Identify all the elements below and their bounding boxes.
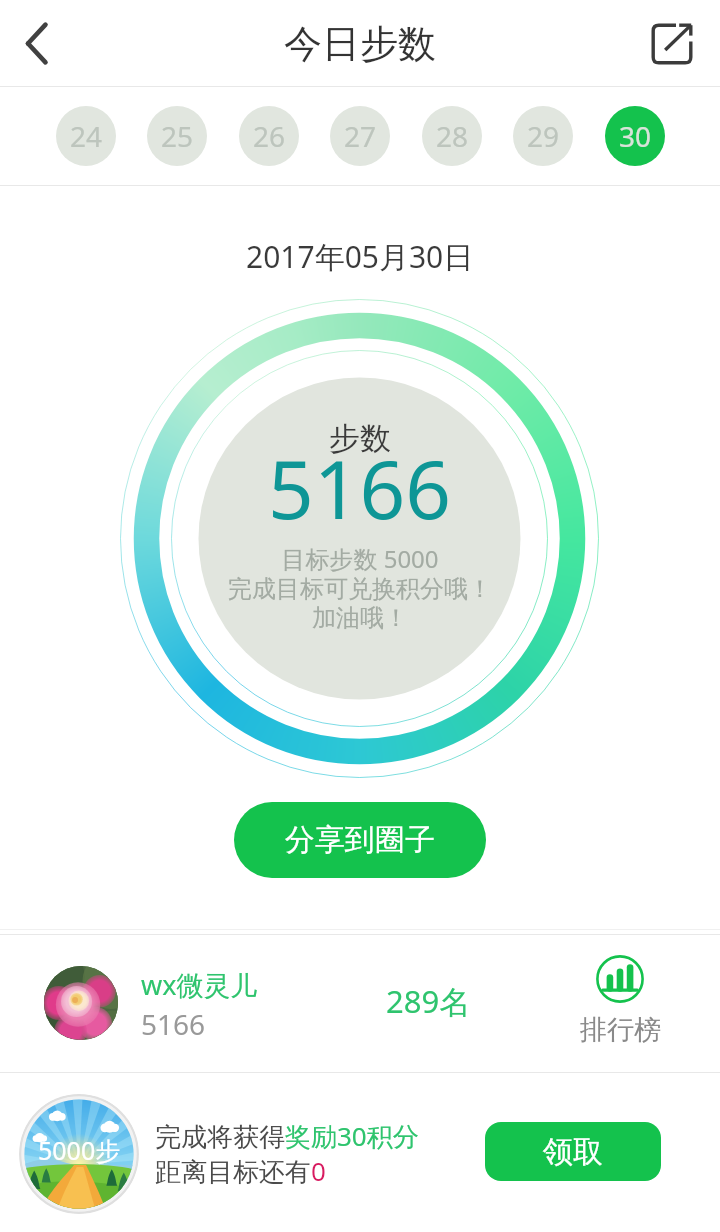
staticText: 步数: [329, 419, 391, 458]
staticText: 完成将获得奖励30积分: [155, 1118, 419, 1154]
staticText: 5000步: [38, 1133, 121, 1167]
button[interactable]: Share: [628, 0, 716, 87]
staticText: 今日步数: [284, 20, 436, 68]
button[interactable]: 27: [330, 106, 390, 166]
button[interactable]: 24: [56, 106, 116, 166]
staticText: 分享到圈子: [285, 821, 435, 859]
staticText: 5166: [268, 433, 452, 542]
button[interactable]: 26: [239, 106, 299, 166]
button[interactable]: 28: [422, 106, 482, 166]
staticText: 289名: [386, 980, 471, 1022]
staticText: 30: [619, 117, 652, 155]
button[interactable]: 排行榜: [570, 949, 670, 1059]
button[interactable]: 30: [605, 106, 665, 166]
button[interactable]: 领取: [485, 1122, 661, 1181]
button[interactable]: 25: [147, 106, 207, 166]
button[interactable]: 5000步 badge: [19, 1094, 139, 1214]
staticText: 排行榜: [580, 1013, 661, 1047]
staticText: 28: [436, 117, 469, 155]
staticText: 26: [253, 117, 286, 155]
staticText: 距离目标还有0: [155, 1153, 326, 1189]
button[interactable]: [24, 935, 524, 1072]
button[interactable]: Back: [0, 0, 76, 87]
staticText: 27: [344, 117, 377, 155]
staticText: 29: [527, 117, 560, 155]
button[interactable]: 29: [513, 106, 573, 166]
staticText: 25: [161, 117, 194, 155]
staticText: 领取: [543, 1133, 603, 1171]
button[interactable]: 分享到圈子: [234, 802, 486, 878]
staticText: 5166: [141, 1005, 206, 1043]
staticText: wx微灵儿: [141, 966, 258, 1003]
staticText: 24: [70, 117, 103, 155]
staticText: 目标步数 5000 完成目标可兑换积分哦！ 加油哦！: [228, 542, 492, 633]
staticText: 2017年05月30日: [246, 236, 474, 277]
